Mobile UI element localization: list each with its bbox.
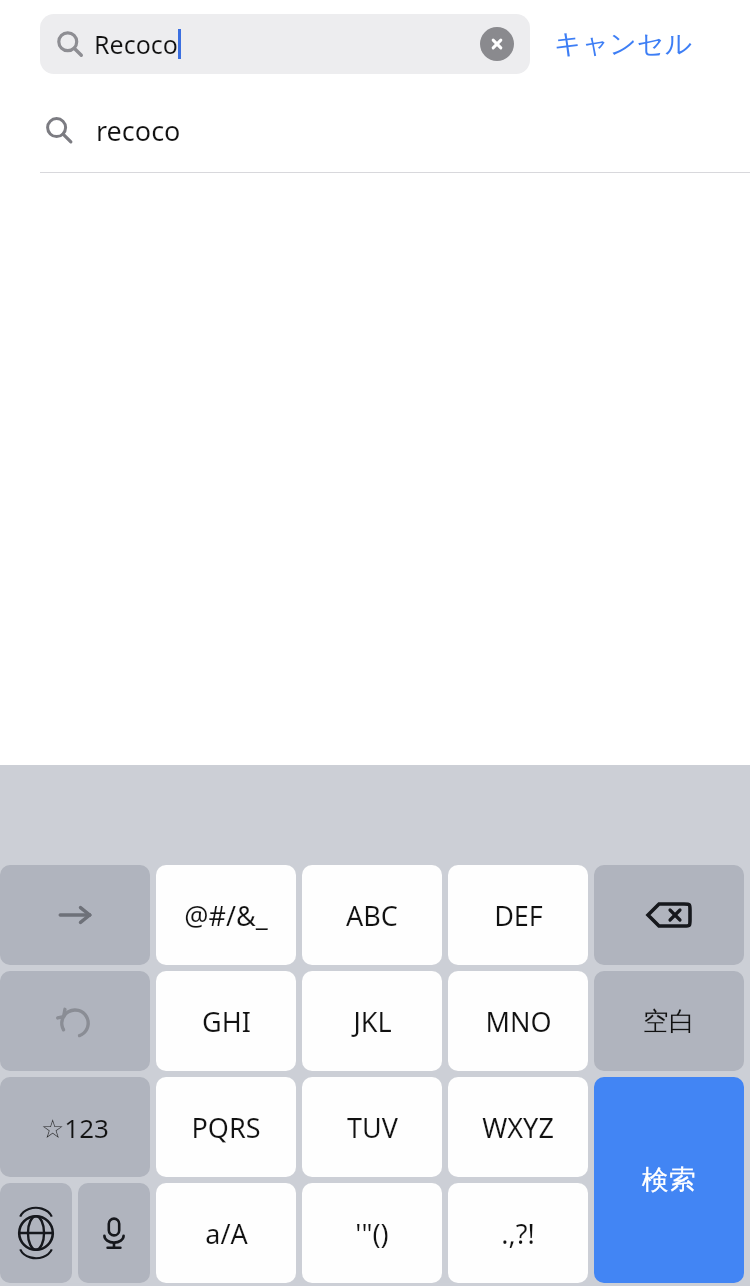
staticText: ☆123 xyxy=(41,1110,109,1145)
button[interactable]: 検索 xyxy=(594,1077,744,1283)
staticText: TUV xyxy=(347,1109,398,1146)
button[interactable]: JKL xyxy=(302,971,442,1071)
button[interactable]: .,?! xyxy=(448,1183,588,1283)
staticText: ABC xyxy=(346,897,398,934)
button[interactable]: Backspace xyxy=(594,865,744,965)
button[interactable]: Voice input xyxy=(78,1183,150,1283)
staticText: 検索 xyxy=(642,1163,696,1197)
button[interactable]: Switch keyboard xyxy=(0,1183,72,1283)
staticText: DEF xyxy=(494,897,543,934)
staticText: キャンセル xyxy=(554,27,693,61)
button[interactable]: MNO xyxy=(448,971,588,1071)
button[interactable]: Recoco xyxy=(40,14,530,74)
staticText: PQRS xyxy=(191,1109,261,1146)
button[interactable]: TUV xyxy=(302,1077,442,1177)
staticText: @#/&_ xyxy=(184,897,268,934)
button[interactable]: ☆123 xyxy=(0,1077,150,1177)
button[interactable]: '"() xyxy=(302,1183,442,1283)
button[interactable]: recoco xyxy=(0,88,750,172)
staticText: MNO xyxy=(485,1003,552,1040)
button[interactable]: GHI xyxy=(156,971,296,1071)
button[interactable]: Clear text xyxy=(480,27,514,61)
button[interactable]: 空白 xyxy=(594,971,744,1071)
staticText: 空白 xyxy=(643,1005,695,1038)
staticText: WXYZ xyxy=(482,1109,554,1146)
staticText: .,?! xyxy=(501,1215,535,1252)
staticText: Recoco xyxy=(94,27,178,61)
button[interactable]: キャンセル xyxy=(548,21,699,67)
button[interactable]: Undo xyxy=(0,971,150,1071)
staticText: JKL xyxy=(353,1003,392,1040)
button[interactable]: @#/&_ xyxy=(156,865,296,965)
button[interactable]: DEF xyxy=(448,865,588,965)
button[interactable]: WXYZ xyxy=(448,1077,588,1177)
staticText: a/A xyxy=(205,1215,248,1252)
staticText: recoco xyxy=(96,112,181,149)
staticText: GHI xyxy=(202,1003,251,1040)
button[interactable]: Next candidate xyxy=(0,865,150,965)
staticText: '"() xyxy=(355,1215,389,1252)
button[interactable]: a/A xyxy=(156,1183,296,1283)
button[interactable]: PQRS xyxy=(156,1077,296,1177)
button[interactable]: ABC xyxy=(302,865,442,965)
